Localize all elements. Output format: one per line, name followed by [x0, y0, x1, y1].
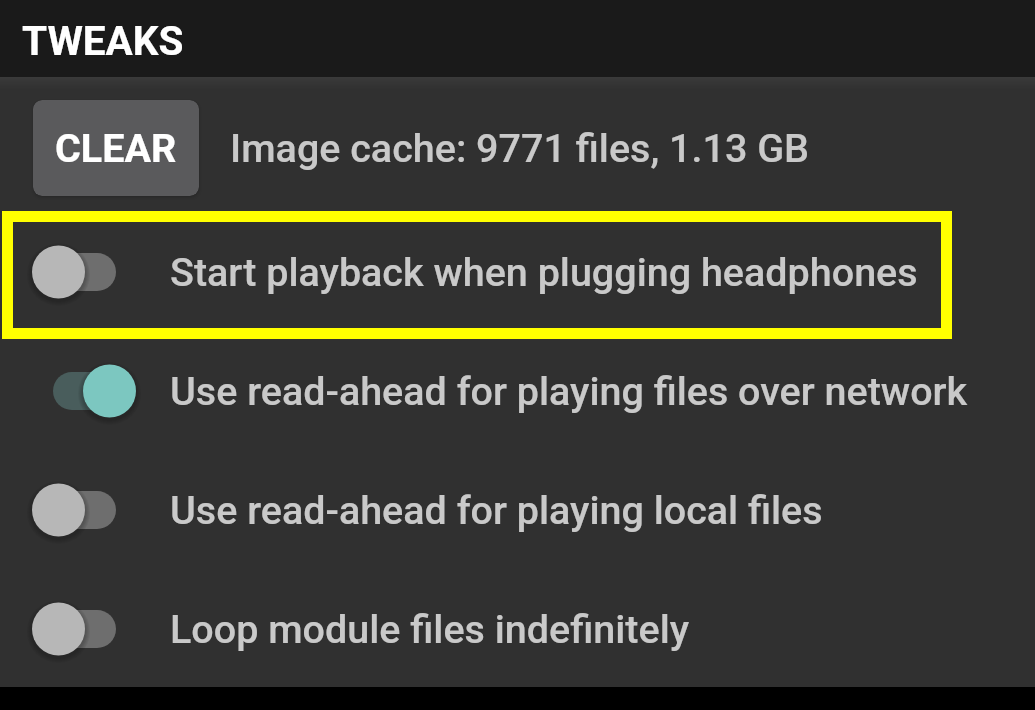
- button[interactable]: Use read-ahead for playing local files, …: [0, 450, 1035, 569]
- staticText: Use read-ahead for playing files over ne…: [170, 368, 968, 414]
- button[interactable]: Start playback when plugging headphones,…: [0, 212, 1035, 331]
- button[interactable]: CLEAR: [33, 100, 199, 196]
- button[interactable]: Use read-ahead for playing files over ne…: [0, 360, 116, 422]
- button[interactable]: Start playback when plugging headphones,…: [0, 241, 116, 303]
- staticText: CLEAR: [55, 125, 177, 171]
- staticText: TWEAKS: [22, 17, 184, 64]
- button[interactable]: Use read-ahead for playing files over ne…: [0, 331, 1035, 450]
- button[interactable]: Loop module files indefinitely, off: [0, 569, 1035, 688]
- staticText: Image cache: 9771 files, 1.13 GB: [230, 125, 810, 171]
- staticText: Start playback when plugging headphones: [170, 249, 918, 295]
- staticText: Use read-ahead for playing local files: [170, 487, 823, 533]
- button[interactable]: Use read-ahead for playing local files, …: [0, 479, 116, 541]
- button[interactable]: Loop module files indefinitely, off: [0, 598, 116, 660]
- staticText: Loop module files indefinitely: [170, 606, 690, 652]
